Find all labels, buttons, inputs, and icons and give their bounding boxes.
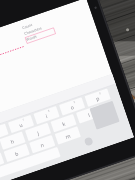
button[interactable]: Tablet with note editor on wooden table xyxy=(0,0,135,180)
